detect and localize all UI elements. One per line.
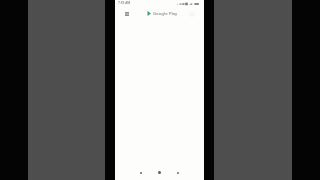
button[interactable]: Back [135, 167, 146, 178]
button[interactable]: Recent apps [172, 167, 183, 178]
button[interactable]: Open navigation menu [122, 9, 132, 19]
staticText: Google Play [153, 10, 178, 16]
button[interactable]: Home [154, 167, 165, 178]
staticText: 7:59 AM [118, 1, 131, 5]
